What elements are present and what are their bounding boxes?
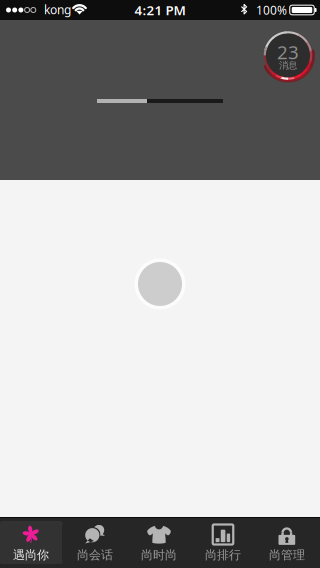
button[interactable]: 23 条消息: [262, 29, 314, 81]
staticText: 尚会话: [77, 548, 113, 562]
button[interactable]: 尚会话: [64, 518, 128, 568]
staticText: 23: [277, 40, 299, 64]
staticText: 消息: [279, 60, 297, 71]
button[interactable]: 尚时尚: [128, 518, 192, 568]
staticText: kong: [44, 1, 71, 17]
button[interactable]: 尚排行: [192, 518, 256, 568]
staticText: 尚管理: [269, 548, 305, 562]
staticText: 尚时尚: [141, 548, 177, 562]
staticText: 100%: [256, 2, 287, 18]
staticText: 遇尚你: [13, 548, 49, 562]
staticText: 4:21 PM: [134, 1, 185, 19]
staticText: 尚排行: [205, 548, 241, 562]
button[interactable]: 遇尚你: [0, 518, 64, 568]
button[interactable]: 尚管理: [256, 518, 320, 568]
